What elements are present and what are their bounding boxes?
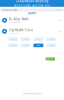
- button[interactable]: 16:00: [46, 44, 56, 47]
- staticText: Dr. Alice Smith: [9, 17, 29, 21]
- button[interactable]: 15:00: [33, 44, 43, 47]
- button[interactable]: 11:00: [33, 37, 43, 41]
- button[interactable]: 14:00: [21, 44, 31, 47]
- button[interactable]: City Health Clinic: [0, 26, 64, 37]
- staticText: 15:00: [36, 44, 40, 46]
- button[interactable]: Confirm: [45, 57, 55, 61]
- staticText: 12 Main Street: [9, 32, 18, 34]
- staticText: Confirm: [46, 55, 55, 62]
- staticText: 09:00: [11, 38, 15, 40]
- staticText: Need help? Contact support: [22, 93, 41, 94]
- staticText: 16:00: [49, 44, 53, 46]
- staticText: 2.1 km: [58, 30, 62, 32]
- staticText: General Medicine: [9, 21, 21, 23]
- button[interactable]: 10:00: [21, 37, 31, 41]
- button[interactable]: Need help? Contact support: [22, 93, 41, 94]
- staticText: Select a date and time slot: [14, 4, 50, 7]
- staticText: Step 2 of 3 · Choose a time: [2, 9, 17, 11]
- staticText: 14:00: [24, 44, 28, 46]
- staticText: Change: [56, 9, 62, 11]
- staticText: 13:00: [11, 44, 15, 46]
- staticText: 11:00: [36, 38, 40, 40]
- staticText: City Health Clinic: [9, 28, 33, 32]
- button[interactable]: 09:00: [8, 37, 18, 41]
- button[interactable]: Dr. Alice Smith: [0, 15, 64, 26]
- staticText: TODAY: [27, 11, 36, 15]
- staticText: 30 min: [58, 19, 62, 21]
- staticText: 12:00: [49, 38, 53, 40]
- button[interactable]: 12:00: [46, 37, 56, 41]
- button[interactable]: 13:00: [8, 44, 18, 47]
- staticText: 10:00: [24, 38, 28, 40]
- staticText: Consultation Booking: [15, 0, 48, 3]
